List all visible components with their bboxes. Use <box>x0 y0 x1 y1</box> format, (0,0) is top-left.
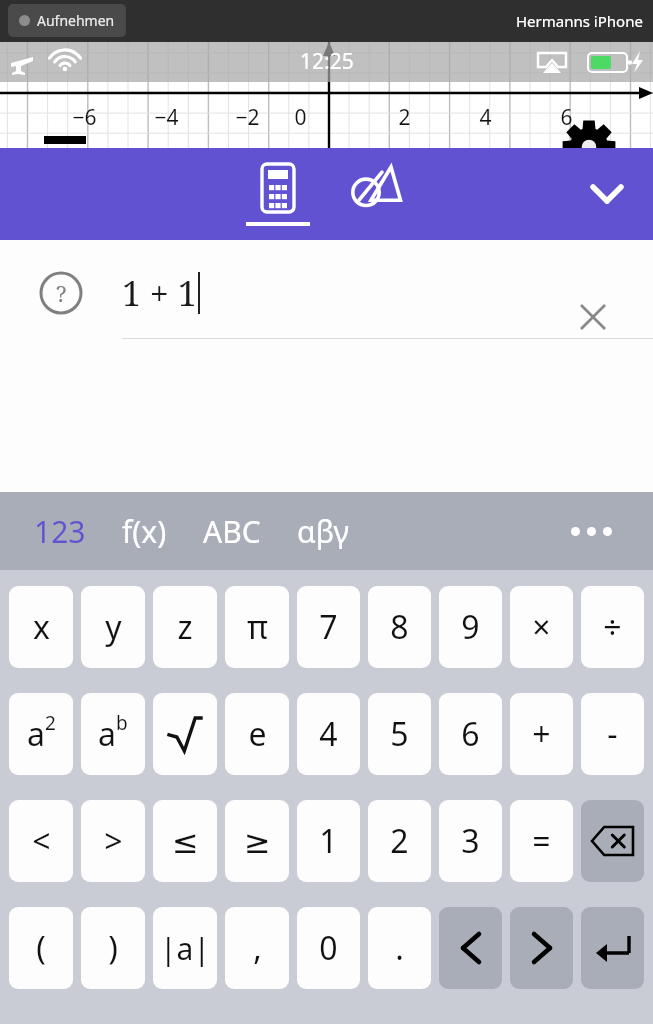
button[interactable]: Enter <box>581 907 644 989</box>
button[interactable]: 9 <box>439 586 502 668</box>
staticText: ≥ <box>244 823 271 860</box>
button[interactable]: y <box>81 586 145 668</box>
button[interactable]: 123 <box>24 505 96 557</box>
button[interactable]: 7 <box>297 586 360 668</box>
staticText: z <box>177 605 193 649</box>
staticText: ABC <box>203 511 261 552</box>
staticText: > <box>104 819 123 863</box>
staticText: - <box>607 712 618 756</box>
button[interactable]: Help <box>36 268 86 318</box>
staticText: f(x) <box>122 511 167 552</box>
staticText: ÷ <box>603 605 622 649</box>
staticText: x <box>33 605 50 649</box>
staticText: = <box>532 819 551 863</box>
button[interactable]: |a| <box>153 907 217 989</box>
button[interactable]: Backspace <box>581 800 644 882</box>
staticText: 4 <box>319 712 338 756</box>
button[interactable]: < <box>9 800 73 882</box>
staticText: + <box>532 712 551 756</box>
staticText: a <box>98 712 116 756</box>
button[interactable]: Move right <box>510 907 573 989</box>
button[interactable]: Geometry <box>340 148 412 240</box>
staticText: −2 <box>235 103 260 132</box>
button[interactable]: 2 <box>368 800 431 882</box>
button[interactable]: ) <box>81 907 145 989</box>
button[interactable]: > <box>81 800 145 882</box>
staticText: e <box>248 712 267 756</box>
staticText: ( <box>36 926 46 970</box>
button[interactable]: Square root <box>153 693 217 775</box>
staticText: 9 <box>461 605 480 649</box>
button[interactable]: Clear <box>568 292 618 342</box>
button[interactable]: αβγ <box>287 505 359 557</box>
staticText: . <box>395 926 404 970</box>
button[interactable]: Calculator <box>240 148 316 240</box>
button[interactable]: , <box>225 907 289 989</box>
staticText: 2 <box>398 103 411 132</box>
staticText: 5 <box>390 712 409 756</box>
button[interactable]: ÷ <box>581 586 644 668</box>
staticText: , <box>253 926 262 970</box>
button[interactable]: ≥ <box>225 800 289 882</box>
staticText: 0 <box>319 926 338 970</box>
staticText: 1 <box>319 819 338 863</box>
staticText: y <box>105 605 122 649</box>
staticText: Hermanns iPhone <box>516 11 643 31</box>
button[interactable]: 4 <box>297 693 360 775</box>
button[interactable]: ≤ <box>153 800 217 882</box>
button[interactable]: Move left <box>439 907 502 989</box>
staticText: b <box>116 710 128 736</box>
staticText: 7 <box>319 605 338 649</box>
staticText: 12:25 <box>300 47 354 76</box>
button[interactable]: = <box>510 800 573 882</box>
button[interactable]: 3 <box>439 800 502 882</box>
staticText: |a| <box>160 928 210 969</box>
button[interactable]: . <box>368 907 431 989</box>
button[interactable]: 6 <box>439 693 502 775</box>
button[interactable]: ( <box>9 907 73 989</box>
staticText: < <box>32 819 51 863</box>
staticText: 2 <box>390 819 409 863</box>
staticText: 2 <box>45 710 56 736</box>
staticText: π <box>247 605 268 649</box>
staticText: 123 <box>34 511 86 552</box>
staticText: a <box>27 712 45 756</box>
button[interactable]: Menu <box>40 126 90 168</box>
button[interactable]: a to the power of b <box>81 693 145 775</box>
staticText: ) <box>108 926 118 970</box>
button[interactable]: + <box>510 693 573 775</box>
staticText: −6 <box>72 103 97 132</box>
button[interactable]: 1 <box>297 800 360 882</box>
button[interactable]: Aufnehmen <box>8 4 126 37</box>
button[interactable]: Collapse <box>581 168 633 220</box>
button[interactable]: e <box>225 693 289 775</box>
button[interactable]: f(x) <box>112 505 177 557</box>
staticText: ? <box>56 278 67 308</box>
staticText: 8 <box>390 605 409 649</box>
button[interactable]: More <box>561 508 621 554</box>
staticText: −4 <box>154 103 179 132</box>
button[interactable]: Settings <box>560 118 618 176</box>
staticText: 6 <box>560 103 573 132</box>
button[interactable]: 5 <box>368 693 431 775</box>
staticText: 1 + 1 <box>122 270 197 316</box>
button[interactable]: 0 <box>297 907 360 989</box>
staticText: Aufnehmen <box>37 11 115 30</box>
button[interactable]: × <box>510 586 573 668</box>
staticText: × <box>532 605 551 649</box>
button[interactable]: π <box>225 586 289 668</box>
button[interactable]: ABC <box>193 505 271 557</box>
button[interactable]: a squared <box>9 693 73 775</box>
button[interactable]: - <box>581 693 644 775</box>
staticText: 4 <box>479 103 492 132</box>
staticText: 6 <box>461 712 480 756</box>
button[interactable]: 8 <box>368 586 431 668</box>
button[interactable]: z <box>153 586 217 668</box>
staticText: 0 <box>294 103 307 132</box>
button[interactable]: x <box>9 586 73 668</box>
staticText: αβγ <box>297 511 349 552</box>
staticText: 3 <box>461 819 480 863</box>
staticText: ≤ <box>172 823 199 860</box>
